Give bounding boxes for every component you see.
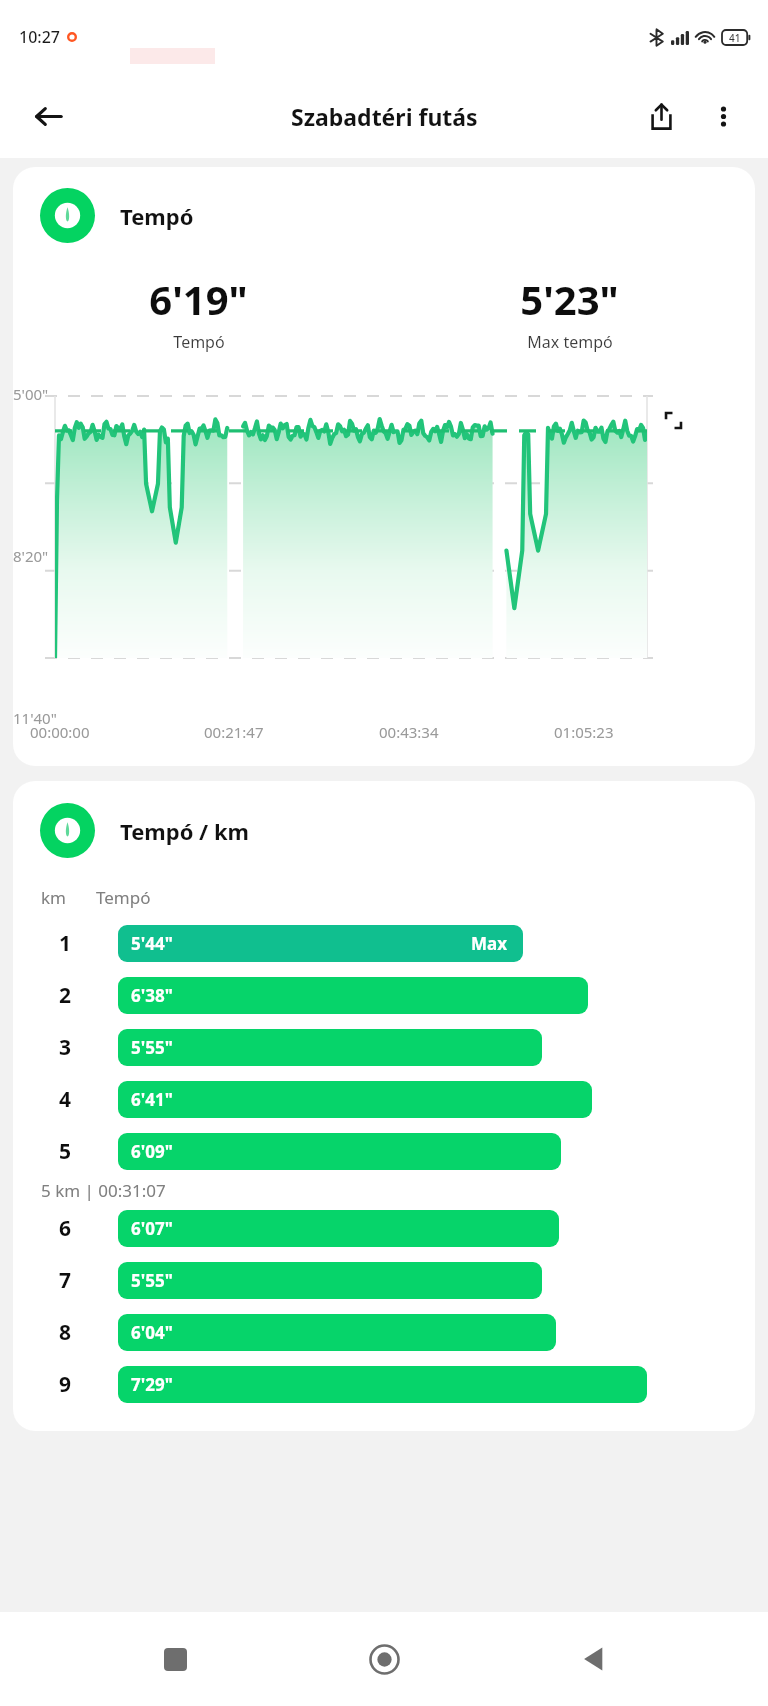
staticText: km: [41, 886, 66, 909]
staticText: 7'29": [131, 1373, 173, 1396]
staticText: 00:00:00: [30, 722, 204, 742]
staticText: 01:05:23: [554, 722, 729, 742]
button[interactable]: 6: [13, 1207, 755, 1249]
staticText: 6'19": [149, 272, 248, 326]
staticText: 5'55": [131, 1269, 173, 1292]
staticText: 10:27: [19, 26, 60, 48]
staticText: Tempó: [173, 331, 225, 353]
staticText: 5'00": [13, 384, 49, 404]
staticText: 11'40": [13, 708, 57, 728]
staticText: 1: [59, 929, 72, 958]
staticText: 6'09": [131, 1140, 173, 1163]
button[interactable]: Back: [559, 1624, 629, 1694]
staticText: 8'20": [13, 546, 49, 566]
button[interactable]: 1: [13, 922, 755, 964]
staticText: 00:43:34: [379, 722, 554, 742]
staticText: 5 km | 00:31:07: [41, 1179, 166, 1202]
staticText: 6'38": [131, 984, 173, 1007]
staticText: Max: [471, 932, 508, 955]
staticText: 00:21:47: [204, 722, 379, 742]
staticText: 7: [59, 1266, 72, 1295]
staticText: 5'23": [520, 272, 619, 326]
button[interactable]: 4: [13, 1078, 755, 1120]
staticText: 4: [59, 1085, 72, 1114]
staticText: Szabadtéri futás: [291, 101, 478, 132]
staticText: 6'04": [131, 1321, 173, 1344]
staticText: Tempó: [120, 201, 194, 231]
button[interactable]: Share: [630, 85, 692, 147]
button[interactable]: 8: [13, 1311, 755, 1353]
button[interactable]: More options: [692, 85, 754, 147]
staticText: 2: [59, 981, 72, 1010]
button[interactable]: 9: [13, 1363, 755, 1405]
button[interactable]: Recent apps: [140, 1624, 210, 1694]
button[interactable]: Tempó / km: [13, 781, 755, 1431]
button[interactable]: Back: [17, 85, 79, 147]
staticText: Tempó: [96, 886, 151, 909]
button[interactable]: 7: [13, 1259, 755, 1301]
staticText: 8: [59, 1318, 72, 1347]
button[interactable]: 2: [13, 974, 755, 1016]
staticText: Max tempó: [527, 331, 613, 353]
staticText: 41: [729, 31, 741, 45]
staticText: 6: [59, 1214, 72, 1243]
button[interactable]: Tempó: [13, 167, 755, 766]
staticText: 6'07": [131, 1217, 173, 1240]
button[interactable]: 3: [13, 1026, 755, 1068]
staticText: Tempó / km: [120, 816, 250, 846]
staticText: 5'44": [131, 932, 173, 955]
staticText: 6'41": [131, 1088, 173, 1111]
staticText: 3: [59, 1033, 72, 1062]
button[interactable]: 5: [13, 1130, 755, 1172]
button[interactable]: Home: [349, 1624, 419, 1694]
staticText: 5'55": [131, 1036, 173, 1059]
staticText: 5: [59, 1137, 72, 1166]
button[interactable]: Expand chart: [653, 400, 693, 440]
staticText: 9: [59, 1370, 72, 1399]
